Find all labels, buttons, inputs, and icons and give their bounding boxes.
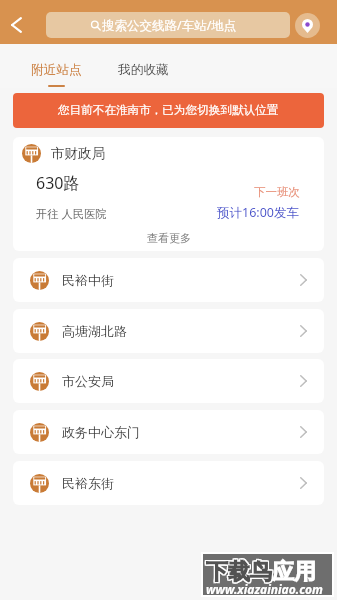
button[interactable]: 民裕中街 [13, 258, 324, 302]
staticText: 下载鸟 [205, 559, 271, 587]
button[interactable]: 我的收藏 [113, 44, 173, 88]
staticText: 民裕东街 [62, 475, 114, 491]
button[interactable]: 民裕东街 [13, 461, 324, 505]
button[interactable]: Locate [295, 13, 320, 38]
button[interactable]: 您目前不在淮南市，已为您切换到默认位置 [13, 93, 324, 128]
staticText: www.xiazainiao.com [206, 581, 323, 597]
staticText: 我的收藏 [118, 62, 169, 78]
staticText: 下载鸟 [207, 557, 273, 585]
staticText: 政务中心东门 [62, 424, 140, 440]
staticText: 下载鸟 [206, 557, 272, 585]
staticText: 应用 [272, 558, 316, 586]
staticText: 附近站点 [31, 62, 82, 78]
staticText: 开往 人民医院 [36, 206, 107, 221]
button[interactable]: Back [4, 13, 28, 37]
staticText: 下一班次 [254, 185, 300, 199]
staticText: 预计16:00发车 [217, 204, 299, 221]
staticText: 下载鸟 [207, 558, 273, 586]
button[interactable]: 市财政局 [13, 137, 324, 251]
staticText: 市公安局 [62, 373, 114, 389]
staticText: 查看更多 [147, 231, 191, 245]
staticText: 搜索公交线路/车站/地点 [102, 17, 237, 34]
button[interactable]: 高塘湖北路 [13, 309, 324, 353]
button[interactable]: 市公安局 [13, 359, 324, 403]
staticText: 下载鸟 [205, 557, 271, 585]
button[interactable]: 搜索公交线路/车站/地点 [46, 12, 290, 38]
staticText: 您目前不在淮南市，已为您切换到默认位置 [58, 103, 279, 118]
staticText: 下载鸟 [206, 558, 272, 586]
staticText: 高塘湖北路 [62, 323, 127, 339]
button[interactable]: 附近站点 [26, 44, 86, 88]
staticText: 下载鸟 [205, 558, 271, 586]
staticText: 市财政局 [51, 145, 105, 162]
staticText: 民裕中街 [62, 272, 114, 288]
staticText: 下载鸟 [206, 559, 272, 587]
button[interactable]: 政务中心东门 [13, 410, 324, 454]
staticText: 630路 [36, 172, 80, 194]
staticText: 下载鸟 [207, 559, 273, 587]
